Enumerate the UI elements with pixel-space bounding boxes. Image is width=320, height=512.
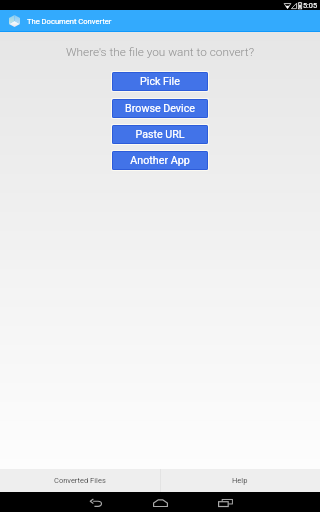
button[interactable]: Converted Files (0, 469, 160, 492)
staticText: Paste URL (135, 128, 185, 141)
staticText: Converted Files (54, 476, 106, 485)
button[interactable]: Pick File (112, 72, 208, 91)
staticText: Where's the file you want to convert? (66, 45, 254, 59)
button[interactable]: Another App (112, 151, 208, 170)
staticText: Pick File (140, 75, 180, 88)
staticText: The Document Converter (27, 17, 112, 26)
staticText: Another App (130, 154, 190, 167)
button[interactable]: Paste URL (112, 125, 208, 144)
button[interactable]: Help (160, 469, 320, 492)
staticText: Browse Device (125, 102, 195, 115)
staticText: Help (232, 476, 248, 485)
staticText: 5:05 (303, 1, 318, 10)
button[interactable]: Browse Device (112, 99, 208, 118)
button[interactable]: Home (140, 492, 180, 512)
button[interactable]: Recent apps (205, 492, 245, 512)
button[interactable]: Back (76, 492, 116, 512)
